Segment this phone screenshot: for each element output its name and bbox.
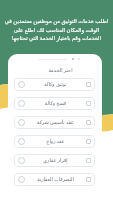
staticText: اطلب خدمات التوثيق من موظفين معتمدين في …: [3, 17, 110, 41]
button[interactable]: إقرار عقاري: [14, 154, 95, 167]
staticText: عقد تأسيس شركة: [27, 119, 84, 126]
button[interactable]: التصرفات العقارية: [14, 173, 95, 186]
staticText: فسخ وكالة: [27, 100, 84, 107]
button[interactable]: توثيق وكالة: [14, 78, 95, 91]
staticText: التصرفات العقارية: [27, 176, 84, 183]
button[interactable]: فسخ وكالة: [14, 97, 95, 110]
button[interactable]: عقد تأسيس شركة: [14, 116, 95, 129]
staticText: إقرار عقاري: [27, 157, 84, 164]
button[interactable]: عقد زواج: [14, 135, 95, 148]
staticText: اختر الخدمة: [19, 67, 102, 74]
staticText: عقد زواج: [27, 138, 84, 145]
staticText: توثيق وكالة: [27, 81, 84, 88]
